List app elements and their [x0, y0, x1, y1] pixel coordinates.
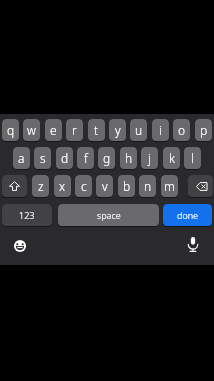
- button[interactable]: done: [163, 204, 212, 227]
- button[interactable]: x: [54, 175, 71, 198]
- button[interactable]: w: [23, 119, 40, 142]
- staticText: y: [115, 122, 121, 138]
- staticText: l: [191, 150, 194, 166]
- staticText: a: [18, 150, 25, 166]
- button[interactable]: y: [109, 119, 126, 142]
- staticText: k: [169, 150, 175, 166]
- button[interactable]: u: [130, 119, 147, 142]
- staticText: z: [38, 178, 44, 194]
- staticText: r: [72, 122, 77, 138]
- button[interactable]: e: [45, 119, 62, 142]
- button[interactable]: q: [2, 119, 19, 142]
- staticText: h: [125, 150, 133, 166]
- staticText: c: [81, 178, 87, 194]
- button[interactable]: t: [88, 119, 105, 142]
- staticText: d: [61, 150, 69, 166]
- button[interactable]: [183, 234, 203, 254]
- staticText: b: [123, 178, 131, 194]
- button[interactable]: [2, 175, 27, 198]
- button[interactable]: j: [141, 147, 158, 170]
- staticText: u: [135, 122, 143, 138]
- staticText: g: [103, 150, 111, 166]
- staticText: t: [94, 122, 99, 138]
- button[interactable]: m: [161, 175, 178, 198]
- button[interactable]: b: [118, 175, 135, 198]
- staticText: p: [200, 122, 208, 138]
- staticText: e: [50, 122, 57, 138]
- button[interactable]: g: [98, 147, 115, 170]
- staticText: o: [178, 122, 186, 138]
- button[interactable]: h: [120, 147, 137, 170]
- button[interactable]: v: [96, 175, 113, 198]
- button[interactable]: space: [58, 204, 159, 227]
- staticText: w: [27, 122, 36, 138]
- button[interactable]: f: [77, 147, 94, 170]
- button[interactable]: r: [66, 119, 83, 142]
- staticText: m: [164, 178, 175, 194]
- staticText: s: [40, 150, 46, 166]
- staticText: x: [59, 178, 66, 194]
- staticText: f: [84, 150, 88, 166]
- button[interactable]: l: [184, 147, 201, 170]
- button[interactable]: n: [139, 175, 156, 198]
- staticText: v: [102, 178, 108, 194]
- staticText: q: [7, 122, 15, 138]
- button[interactable]: o: [173, 119, 190, 142]
- staticText: i: [159, 122, 162, 138]
- button[interactable]: d: [56, 147, 73, 170]
- button[interactable]: [10, 236, 30, 256]
- staticText: j: [148, 150, 151, 166]
- button[interactable]: z: [32, 175, 49, 198]
- button[interactable]: [188, 175, 213, 198]
- button[interactable]: c: [75, 175, 92, 198]
- staticText: space: [97, 209, 121, 221]
- button[interactable]: a: [13, 147, 30, 170]
- button[interactable]: k: [163, 147, 180, 170]
- button[interactable]: s: [34, 147, 51, 170]
- button[interactable]: p: [195, 119, 212, 142]
- button[interactable]: 123: [2, 204, 52, 227]
- staticText: 123: [19, 209, 35, 221]
- staticText: n: [144, 178, 152, 194]
- button[interactable]: i: [152, 119, 169, 142]
- staticText: done: [177, 209, 199, 221]
